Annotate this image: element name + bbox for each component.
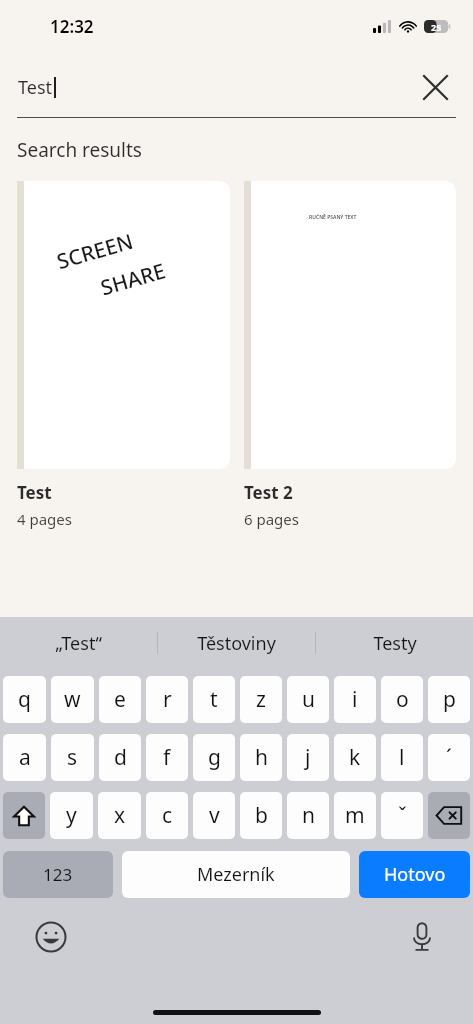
staticText: l xyxy=(399,743,405,772)
staticText: Search results xyxy=(17,137,142,163)
staticText: a xyxy=(19,743,31,772)
button[interactable]: Těstoviny xyxy=(158,617,315,669)
staticText: g xyxy=(208,743,221,772)
staticText: Těstoviny xyxy=(197,631,276,656)
staticText: n xyxy=(302,801,315,830)
button[interactable]: p xyxy=(428,676,470,723)
staticText: q xyxy=(18,685,31,714)
staticText: z xyxy=(256,685,266,714)
staticText: Test xyxy=(18,75,53,100)
staticText: SHARE xyxy=(97,256,169,303)
button[interactable]: c xyxy=(146,792,188,839)
button[interactable]: a xyxy=(3,734,46,781)
button[interactable]: Clear search xyxy=(415,67,455,107)
button[interactable]: q xyxy=(3,676,46,723)
staticText: o xyxy=(396,685,409,714)
button[interactable]: e xyxy=(99,676,141,723)
staticText: RUČNĚ PSANÝ TEXT xyxy=(309,214,357,221)
staticText: x xyxy=(114,801,126,830)
staticText: Test 2 xyxy=(244,481,293,504)
staticText: f xyxy=(163,743,171,772)
button[interactable]: w xyxy=(51,676,94,723)
staticText: Test xyxy=(17,481,52,504)
staticText: b xyxy=(255,801,268,830)
staticText: u xyxy=(302,685,315,714)
button[interactable]: Dictation xyxy=(401,916,443,958)
staticText: ˇ xyxy=(398,801,407,830)
button[interactable]: ´ xyxy=(428,734,470,781)
button[interactable]: l xyxy=(381,734,423,781)
staticText: e xyxy=(114,685,126,714)
button[interactable]: t xyxy=(193,676,235,723)
staticText: c xyxy=(162,801,173,830)
staticText: 4 pages xyxy=(17,509,72,529)
button[interactable]: Shift xyxy=(3,792,45,839)
button[interactable]: f xyxy=(146,734,188,781)
button[interactable]: RUČNĚ PSANÝ TEXT xyxy=(244,181,456,529)
button[interactable]: v xyxy=(193,792,235,839)
button[interactable]: k xyxy=(334,734,376,781)
button[interactable]: r xyxy=(146,676,188,723)
staticText: d xyxy=(114,743,127,772)
button[interactable]: o xyxy=(381,676,423,723)
staticText: m xyxy=(345,801,365,830)
button[interactable]: u xyxy=(287,676,329,723)
staticText: ´ xyxy=(446,743,452,772)
button[interactable]: SCREEN xyxy=(17,181,230,529)
staticText: „Test“ xyxy=(55,631,102,656)
button[interactable]: g xyxy=(193,734,235,781)
staticText: Testy xyxy=(373,631,417,656)
button[interactable]: z xyxy=(240,676,282,723)
staticText: 6 pages xyxy=(244,509,299,529)
staticText: Hotovo xyxy=(384,862,446,887)
button[interactable]: d xyxy=(99,734,141,781)
button[interactable]: i xyxy=(334,676,376,723)
staticText: w xyxy=(64,685,81,714)
button[interactable]: Emoji xyxy=(30,916,72,958)
button[interactable]: b xyxy=(240,792,282,839)
staticText: Mezerník xyxy=(197,862,275,887)
staticText: 123 xyxy=(43,863,73,886)
staticText: y xyxy=(66,801,77,830)
button[interactable]: s xyxy=(51,734,94,781)
staticText: h xyxy=(255,743,268,772)
button[interactable]: 123 xyxy=(3,851,113,898)
button[interactable]: Backspace xyxy=(428,792,470,839)
staticText: t xyxy=(210,685,218,714)
staticText: k xyxy=(349,743,361,772)
button[interactable]: y xyxy=(50,792,93,839)
staticText: s xyxy=(67,743,78,772)
button[interactable]: j xyxy=(287,734,329,781)
button[interactable]: Mezerník xyxy=(122,851,350,898)
button[interactable]: Testy xyxy=(316,617,473,669)
button[interactable]: n xyxy=(287,792,329,839)
button[interactable]: m xyxy=(334,792,376,839)
button[interactable]: „Test“ xyxy=(0,617,157,669)
staticText: r xyxy=(163,685,172,714)
staticText: 12:32 xyxy=(50,15,94,38)
button[interactable]: h xyxy=(240,734,282,781)
button[interactable]: x xyxy=(98,792,141,839)
button[interactable]: Hotovo xyxy=(359,851,470,898)
staticText: SCREEN xyxy=(53,227,136,276)
staticText: j xyxy=(305,743,311,772)
staticText: i xyxy=(352,685,358,714)
button[interactable]: ˇ xyxy=(381,792,423,839)
staticText: v xyxy=(209,801,220,830)
staticText: 25 xyxy=(431,21,442,33)
staticText: p xyxy=(443,685,456,714)
